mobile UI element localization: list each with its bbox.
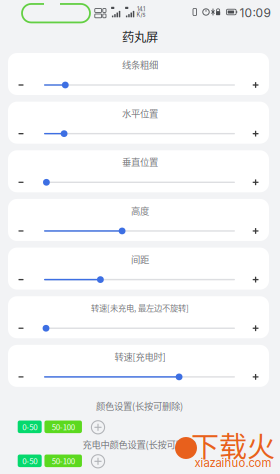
button[interactable]: Increase [244, 74, 268, 96]
staticText: 间距 [131, 252, 149, 266]
staticText: 垂直位置 [122, 155, 158, 168]
staticText: xiazaihuo.com [194, 456, 271, 470]
button[interactable]: Decrease [9, 220, 33, 242]
button[interactable]: 50-100 [44, 420, 82, 433]
staticText: K/s [136, 11, 145, 18]
staticText: 10:09 [239, 6, 270, 20]
staticText: 充电中颜色设置(长按可删除) [82, 437, 196, 451]
button[interactable]: Add colour [89, 419, 106, 436]
staticText: 转速[未充电, 最左边不旋转] [91, 302, 189, 314]
button[interactable]: 0-50 [18, 454, 42, 467]
button[interactable]: Add colour [89, 453, 106, 470]
button[interactable]: Decrease [9, 366, 33, 388]
staticText: 线条粗细 [122, 58, 158, 71]
staticText: 下载火 [191, 425, 275, 465]
button[interactable]: Increase [244, 171, 268, 193]
staticText: 水平位置 [122, 106, 158, 120]
staticText: 转速[充电时] [114, 350, 165, 363]
staticText: 高度 [131, 204, 149, 217]
staticText: 14.1 [137, 6, 145, 13]
staticText: 颜色设置(长按可删除) [96, 399, 183, 412]
staticText: 0-50 [22, 455, 37, 467]
button[interactable]: 50-100 [44, 454, 82, 467]
button[interactable]: Decrease [9, 74, 33, 96]
button[interactable]: Decrease [9, 269, 33, 291]
button[interactable]: Increase [244, 269, 268, 291]
button[interactable]: Decrease [9, 123, 33, 145]
staticText: 50-100 [52, 455, 75, 467]
staticText: 0-50 [22, 421, 37, 433]
staticText: 50-100 [52, 421, 75, 433]
button[interactable]: Increase [244, 317, 268, 339]
button[interactable]: Increase [244, 123, 268, 145]
button[interactable]: Increase [244, 220, 268, 242]
button[interactable]: Decrease [9, 171, 33, 193]
button[interactable]: Increase [244, 366, 268, 388]
staticText: 药丸屏 [122, 28, 158, 45]
button[interactable]: Decrease [9, 317, 33, 339]
button[interactable]: 0-50 [18, 420, 42, 433]
